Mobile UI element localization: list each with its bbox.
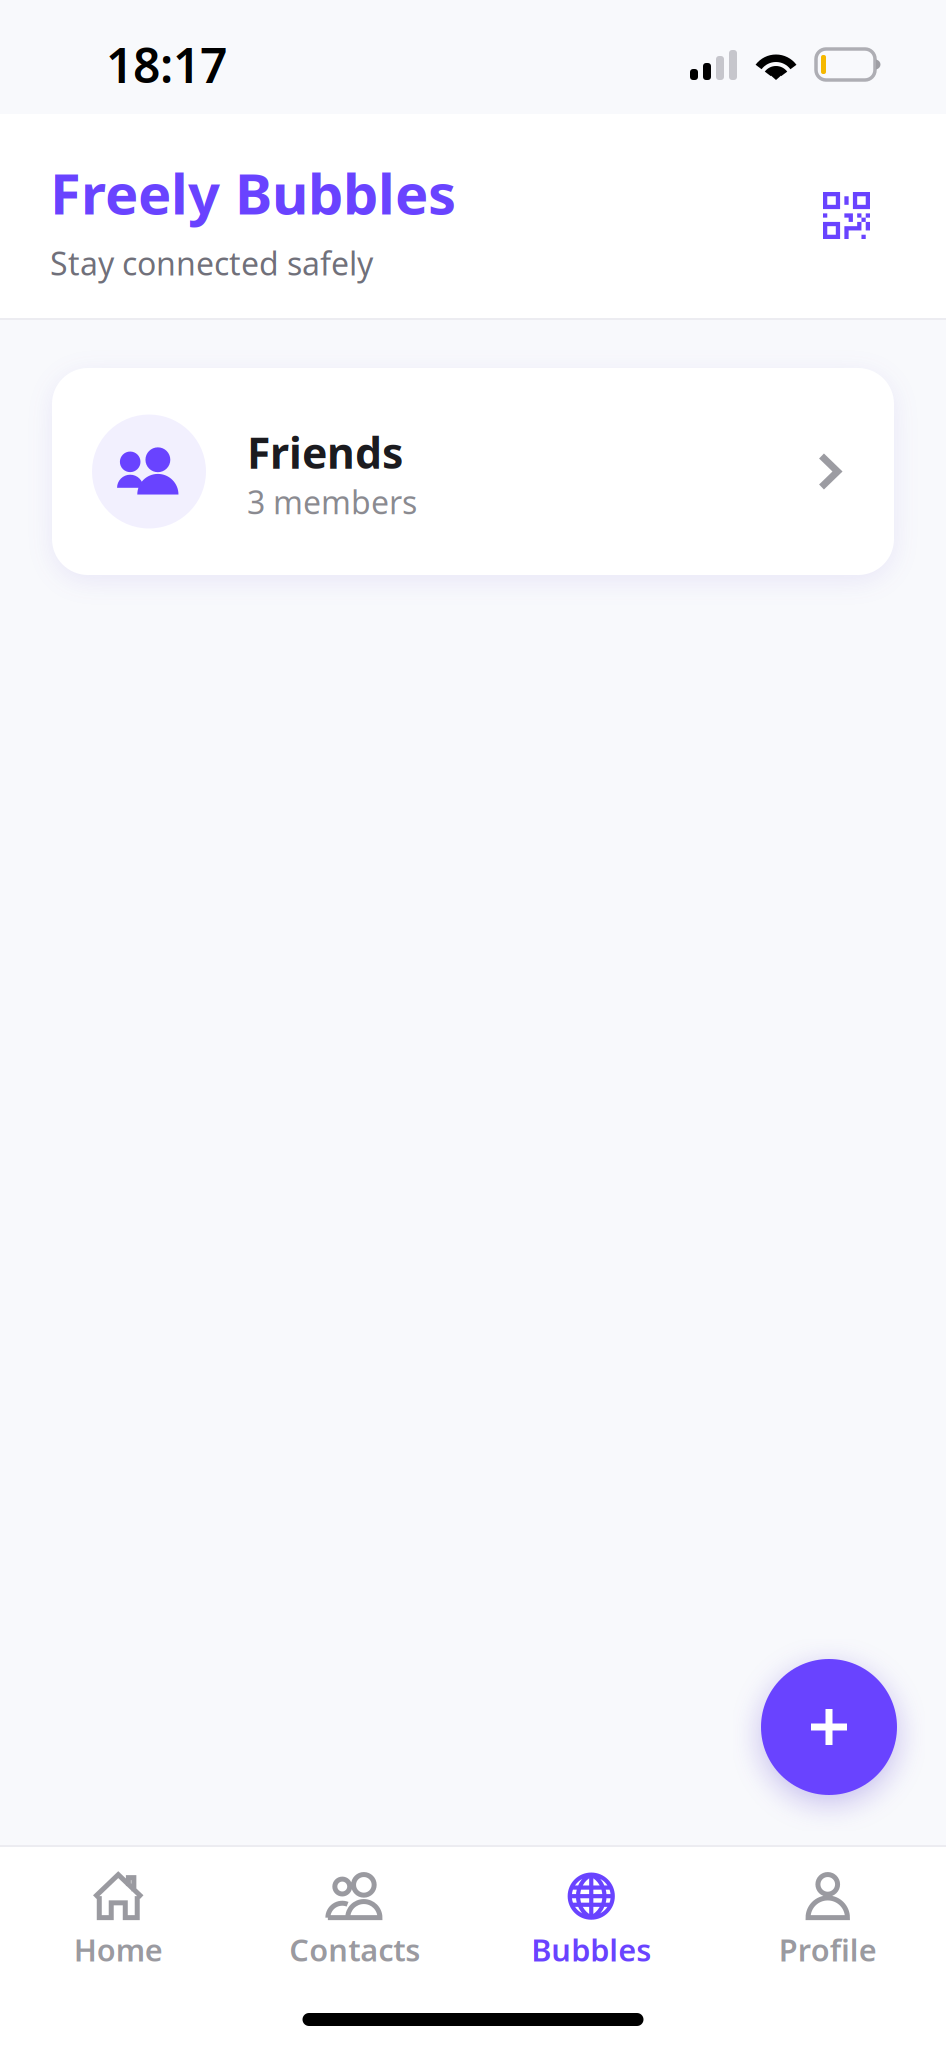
button[interactable]: Profile [709,1847,946,1969]
staticText: 3 members [247,481,417,523]
staticText: Contacts [289,1929,420,1970]
button[interactable]: Show QR code [809,178,884,254]
staticText: 18:17 [106,33,227,96]
staticText: Freely Bubbles [50,156,456,230]
button[interactable]: Friends [52,368,894,575]
button[interactable]: New bubble [761,1659,897,1795]
staticText: Stay connected safely [50,242,373,284]
staticText: Home [74,1929,163,1970]
button[interactable]: Contacts [236,1847,473,1969]
button[interactable]: Home [0,1847,236,1969]
staticText: Friends [247,424,403,481]
button[interactable]: Bubbles [473,1847,709,1969]
staticText: Bubbles [531,1929,651,1970]
staticText: Profile [779,1929,877,1970]
